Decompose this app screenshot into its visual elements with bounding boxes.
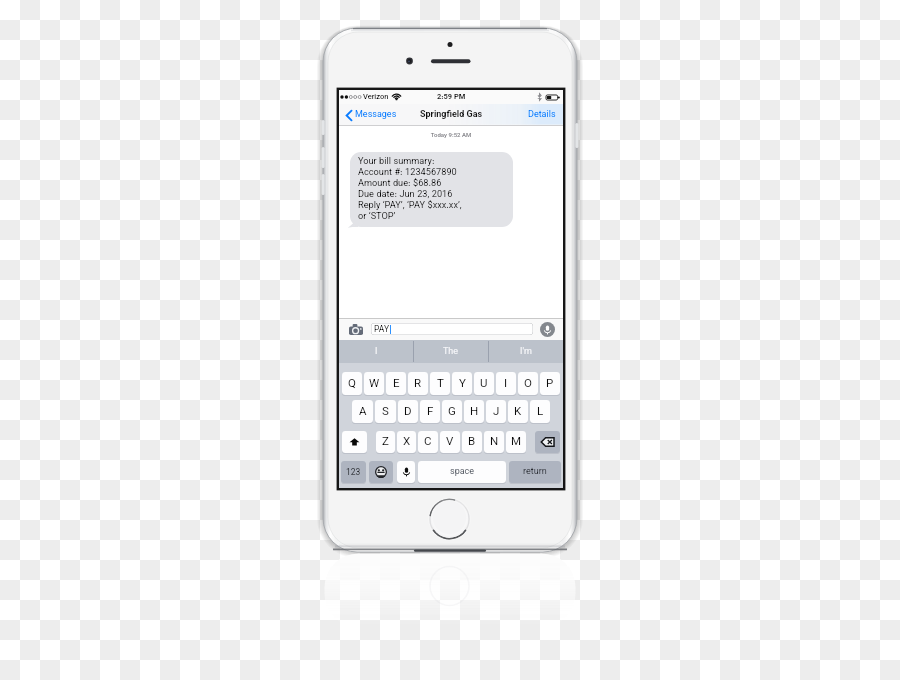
staticText: R <box>414 375 422 393</box>
staticText: return <box>523 465 547 479</box>
button[interactable]: F <box>420 400 440 423</box>
staticText: Details <box>528 108 556 122</box>
staticText: V <box>446 433 454 451</box>
staticText: B <box>468 433 476 451</box>
button[interactable]: K <box>508 400 528 423</box>
staticText: H <box>470 403 479 421</box>
staticText: The <box>443 345 459 359</box>
button[interactable]: L <box>530 400 550 423</box>
button[interactable]: Q <box>342 372 362 395</box>
button[interactable]: Messages <box>339 106 403 125</box>
button[interactable]: C <box>418 431 438 453</box>
staticText: Your bill summary: Account #: 1234567890… <box>358 155 462 224</box>
staticText: S <box>382 403 389 421</box>
button[interactable]: E <box>386 372 406 395</box>
staticText: X <box>403 433 411 451</box>
staticText: Z <box>382 433 389 451</box>
staticText: D <box>404 403 412 421</box>
staticText: O <box>524 375 532 393</box>
button[interactable]: B <box>462 431 482 453</box>
button[interactable]: return <box>509 461 561 483</box>
button[interactable]: T <box>430 372 450 395</box>
button[interactable]: I <box>496 372 516 395</box>
staticText: I'm <box>520 345 532 359</box>
button[interactable]: S <box>375 400 396 423</box>
button[interactable]: 123 <box>341 461 366 483</box>
staticText: M <box>511 433 522 451</box>
staticText: space <box>450 465 475 479</box>
button[interactable]: I'm <box>489 340 563 363</box>
staticText: P <box>546 375 554 393</box>
button[interactable]: U <box>474 372 494 395</box>
staticText: Springfield Gas <box>420 108 483 122</box>
button[interactable]: Dictate <box>540 322 555 337</box>
button[interactable]: R <box>408 372 428 395</box>
button[interactable]: N <box>484 431 504 453</box>
button[interactable]: Details <box>518 104 563 126</box>
staticText: T <box>437 375 444 393</box>
button[interactable]: Delete <box>535 431 560 453</box>
staticText: Verizon <box>363 91 389 103</box>
button[interactable]: Dictation <box>397 461 415 483</box>
staticText: 123 <box>346 466 361 479</box>
button[interactable]: M <box>506 431 526 453</box>
staticText: F <box>427 403 434 421</box>
staticText: 2:59 PM <box>437 91 466 103</box>
button[interactable]: I <box>339 340 413 363</box>
staticText: I <box>504 375 508 393</box>
staticText: Messages <box>355 108 397 122</box>
staticText: U <box>480 375 488 393</box>
staticText: J <box>493 403 500 421</box>
button[interactable]: X <box>397 431 416 453</box>
button[interactable]: Emoji <box>369 461 393 483</box>
staticText: C <box>424 433 432 451</box>
staticText: K <box>514 403 522 421</box>
button[interactable]: Camera <box>348 323 363 335</box>
button[interactable]: Y <box>452 372 472 395</box>
button[interactable]: Shift <box>342 431 367 453</box>
button[interactable]: The <box>414 340 488 363</box>
button[interactable]: P <box>540 372 560 395</box>
staticText: Q <box>348 375 356 393</box>
staticText: G <box>448 403 456 421</box>
staticText: E <box>393 375 400 393</box>
button[interactable]: G <box>442 400 462 423</box>
button[interactable]: V <box>440 431 460 453</box>
staticText: Y <box>459 375 466 393</box>
button[interactable]: H <box>464 400 484 423</box>
button[interactable]: PAY <box>371 323 533 335</box>
button[interactable]: W <box>364 372 384 395</box>
staticText: PAY <box>374 323 390 335</box>
staticText: I <box>375 345 378 359</box>
staticText: L <box>537 403 544 421</box>
button[interactable]: O <box>518 372 538 395</box>
button[interactable]: J <box>486 400 506 423</box>
staticText: N <box>490 433 499 451</box>
staticText: Today 9:52 AM <box>339 131 563 140</box>
staticText: A <box>359 403 367 421</box>
button[interactable]: space <box>418 461 506 483</box>
button[interactable]: D <box>398 400 418 423</box>
button[interactable]: A <box>352 400 373 423</box>
button[interactable]: Z <box>376 431 395 453</box>
staticText: W <box>369 375 380 393</box>
